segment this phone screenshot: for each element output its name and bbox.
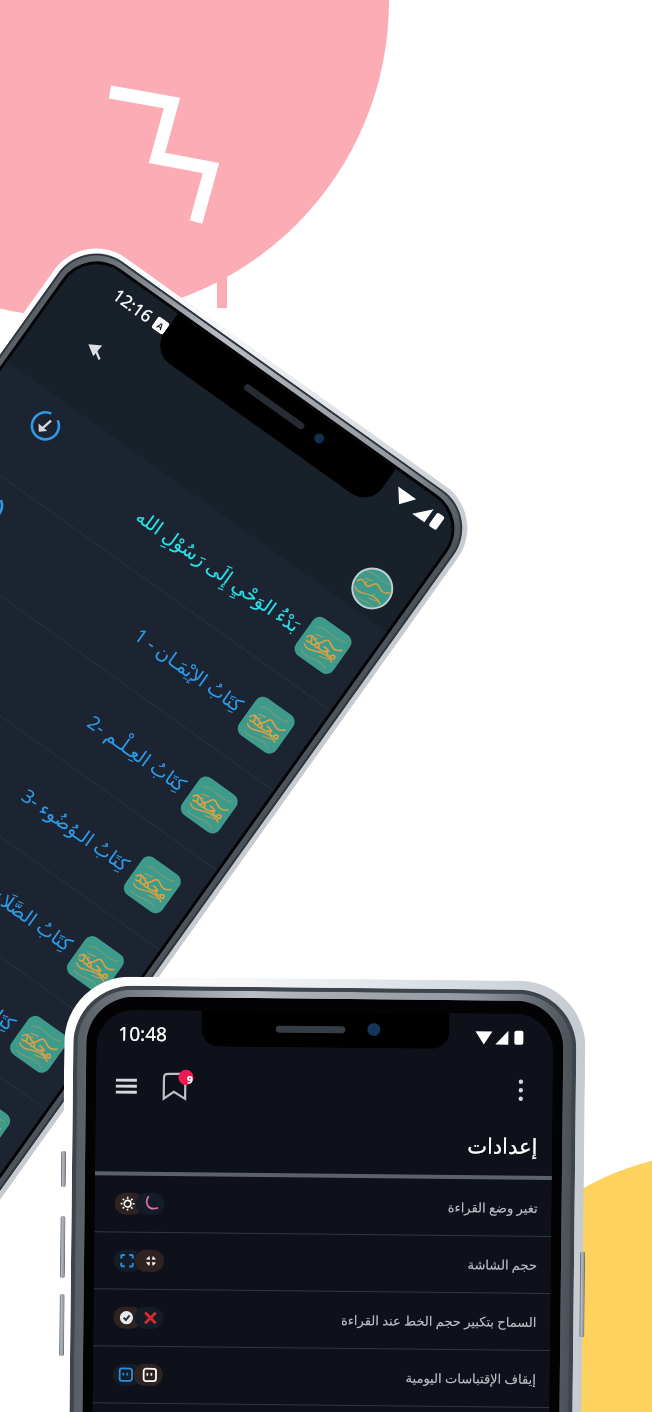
button[interactable]: Download [0, 484, 10, 527]
staticText: محمد [303, 628, 344, 665]
button[interactable]: Download [0, 361, 387, 710]
button[interactable]: Download [0, 760, 102, 1109]
button[interactable]: Download [0, 601, 216, 949]
button[interactable]: Download [0, 521, 273, 870]
staticText: بَدْءُ الوَحْيِ إِلَى رَسُوْلِ الله [47, 443, 305, 638]
staticText: محمد [189, 787, 230, 824]
staticText: إيقاف الإقتباسات اليومية [405, 1369, 536, 1388]
staticText: السماح بتكبير حجم الخط عند القراءة [340, 1311, 536, 1331]
button[interactable]: Download [0, 680, 159, 1029]
button[interactable]: Download [0, 840, 45, 1189]
staticText: محمد [75, 947, 116, 984]
button[interactable]: Menu [116, 1078, 137, 1094]
staticText: حجم الشاشة [467, 1255, 537, 1274]
staticText: 9 [187, 1072, 193, 1086]
staticText: 5- كِتَابُ الزَّكَاة [0, 842, 21, 1037]
staticText: محمد [246, 707, 287, 744]
staticText: 4- كِتَابُ الصَّلَاة [0, 762, 78, 957]
button[interactable]: إيقاف الإقتباسات اليومية [92, 1346, 550, 1407]
button[interactable]: Bookmarks [162, 1072, 192, 1100]
staticText: 3- كِتَابُ الـوُضُوء [0, 682, 135, 877]
button[interactable]: Download [24, 404, 67, 447]
staticText: محمد [0, 1106, 2, 1143]
staticText: محمد [132, 867, 173, 904]
button[interactable]: تفعيل الوضع الليلي [92, 1403, 549, 1412]
button[interactable]: حجم الشاشة [94, 1232, 551, 1293]
staticText: محمد [18, 1026, 59, 1063]
button[interactable]: تغير وضع القراءة [94, 1175, 552, 1236]
staticText: إعدادات [467, 1134, 538, 1159]
staticText: 12:16 [109, 283, 158, 328]
staticText: تغير وضع القراءة [447, 1198, 538, 1217]
staticText: 2- كِتَابُ العِـلْـم [0, 603, 191, 798]
button[interactable]: Download [0, 441, 330, 790]
staticText: 1 - كِتَابُ الإيْمَـان [0, 523, 248, 718]
staticText: A [155, 319, 167, 333]
button[interactable]: More options [511, 1079, 531, 1101]
staticText: 10:48 [118, 1021, 168, 1047]
button[interactable]: Profile [343, 559, 402, 618]
button[interactable]: السماح بتكبير حجم الخط عند القراءة [93, 1289, 551, 1350]
